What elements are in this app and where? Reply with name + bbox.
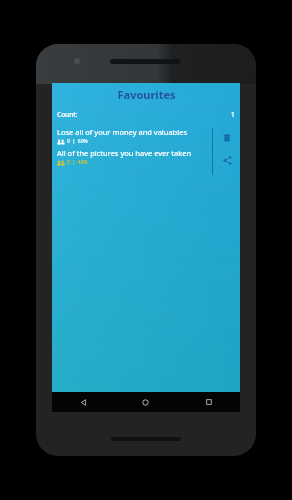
- staticText: Lose all of your money and valuables: [57, 127, 187, 137]
- staticText: All of the pictures you have ever taken: [57, 148, 192, 158]
- staticText: 9 | 60%: [67, 138, 88, 145]
- button[interactable]: Share: [216, 149, 238, 171]
- staticText: 5 | 40%: [67, 159, 88, 166]
- staticText: 1: [231, 110, 235, 119]
- button[interactable]: Recent apps: [177, 392, 240, 412]
- button[interactable]: Count:: [52, 107, 240, 121]
- button[interactable]: Home: [114, 392, 177, 412]
- button[interactable]: Delete: [216, 127, 238, 149]
- button[interactable]: Lose all of your money and valuables: [52, 127, 212, 145]
- button[interactable]: Back: [52, 392, 114, 412]
- staticText: Favourites: [117, 87, 176, 102]
- button[interactable]: All of the pictures you have ever taken: [52, 148, 212, 166]
- staticText: Count:: [57, 110, 78, 119]
